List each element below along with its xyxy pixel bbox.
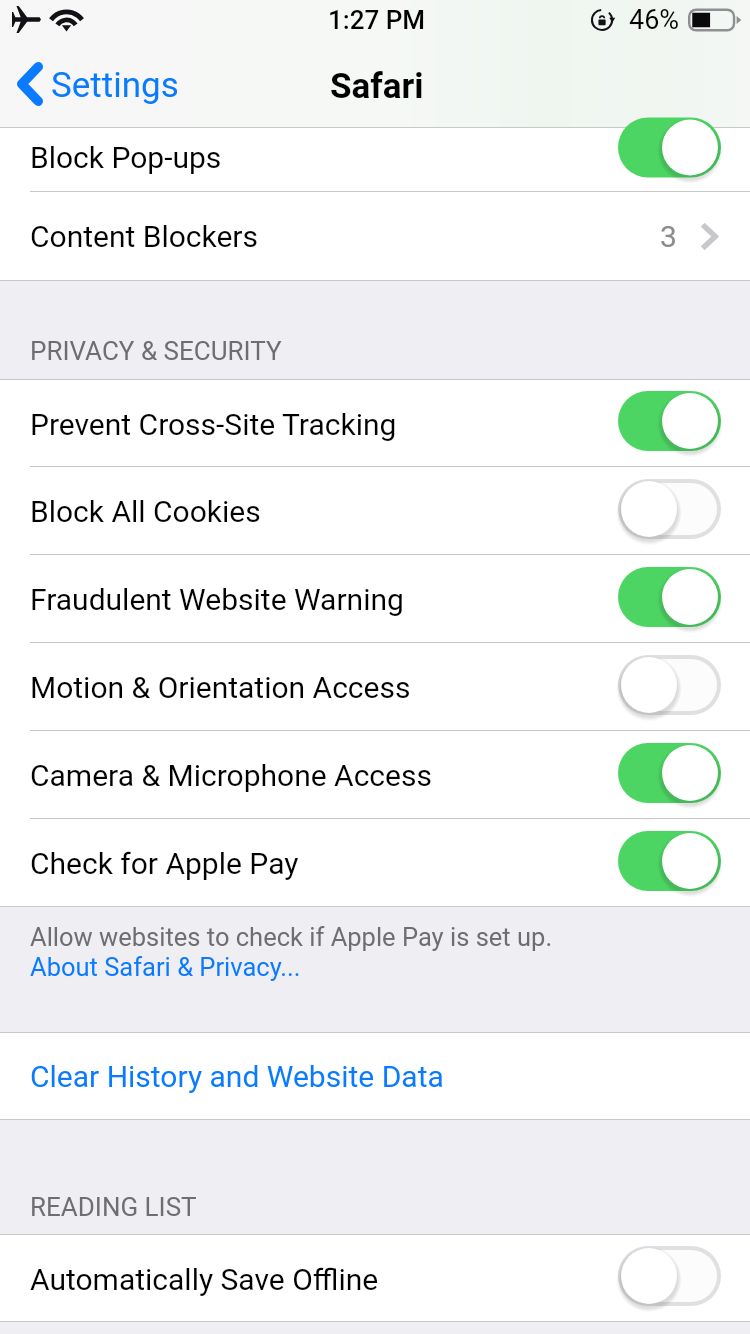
staticText: Prevent Cross-Site Tracking (30, 407, 397, 442)
staticText: 1:27 PM (328, 5, 426, 35)
button[interactable]: Block Pop-ups (0, 128, 750, 191)
staticText: Content Blockers (30, 219, 259, 254)
button[interactable]: Fraudulent Website Warning (0, 555, 750, 642)
button[interactable]: About Safari & Privacy... (30, 952, 301, 982)
staticText: Check for Apple Pay (30, 846, 299, 881)
button[interactable]: Content Blockers (0, 192, 750, 280)
button[interactable]: Back (0, 44, 191, 128)
staticText: PRIVACY & SECURITY (30, 336, 282, 366)
staticText: Fraudulent Website Warning (30, 582, 404, 617)
staticText: Block All Cookies (30, 494, 261, 529)
staticText: READING LIST (30, 1192, 197, 1222)
staticText: Allow websites to check if Apple Pay is … (30, 922, 553, 952)
staticText: Automatically Save Offline (30, 1262, 379, 1297)
staticText: Settings (51, 65, 179, 106)
other: Back (17, 62, 43, 106)
button[interactable]: Motion & Orientation Access (0, 643, 750, 730)
staticText: Motion & Orientation Access (30, 670, 411, 705)
staticText: Camera & Microphone Access (30, 758, 432, 793)
button[interactable]: Block All Cookies (0, 467, 750, 554)
staticText: 46% (629, 4, 680, 36)
button[interactable]: Prevent Cross-Site Tracking (0, 380, 750, 466)
staticText: 3 (660, 219, 677, 254)
button[interactable]: Check for Apple Pay (0, 819, 750, 906)
button[interactable]: Camera & Microphone Access (0, 731, 750, 818)
button[interactable]: Automatically Save Offline (0, 1235, 750, 1321)
staticText: Block Pop-ups (30, 140, 222, 175)
button[interactable]: Clear History and Website Data (0, 1033, 750, 1119)
staticText: Clear History and Website Data (30, 1059, 444, 1094)
staticText: Safari (330, 66, 424, 107)
